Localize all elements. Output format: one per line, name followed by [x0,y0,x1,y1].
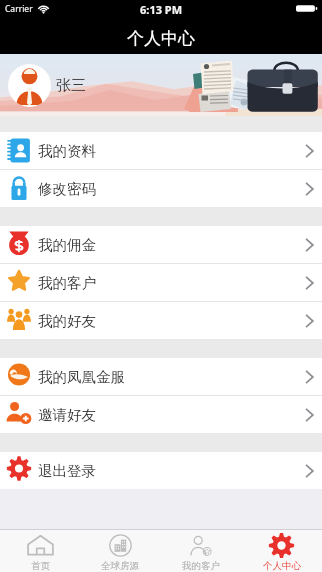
button[interactable]: Friends [0,302,322,339]
staticText: 我的客户 [182,560,220,572]
staticText: 个人中心 [263,560,301,572]
button[interactable]: Log out [0,452,322,489]
staticText: 全球房源 [101,560,139,572]
button[interactable]: Finance [0,358,322,395]
staticText: 邀请好友 [38,406,96,424]
staticText: 个人中心 [127,28,195,49]
staticText: 修改密码 [38,180,96,198]
button[interactable]: Invite friends [0,396,322,433]
staticText: 我的凤凰金服 [38,368,125,386]
button[interactable]: 全球房源 [80,530,160,572]
staticText: 退出登录 [38,462,96,480]
staticText: 我的资料 [38,142,96,160]
button[interactable]: 个人中心 [241,530,322,572]
button[interactable]: Profile [0,132,322,169]
staticText: 首页 [31,560,50,572]
staticText: 张三 [56,76,86,95]
staticText: 6:13 PM [140,2,183,17]
staticText: 我的好友 [38,312,96,330]
button[interactable]: Customers [0,264,322,301]
staticText: 我的佣金 [38,236,96,254]
button[interactable]: 我的客户 [160,530,241,572]
staticText: Carrier [5,3,33,15]
staticText: 我的客户 [38,274,96,292]
button[interactable]: Commission [0,226,322,263]
button[interactable]: 首页 [0,530,80,572]
button[interactable]: Change password [0,170,322,207]
